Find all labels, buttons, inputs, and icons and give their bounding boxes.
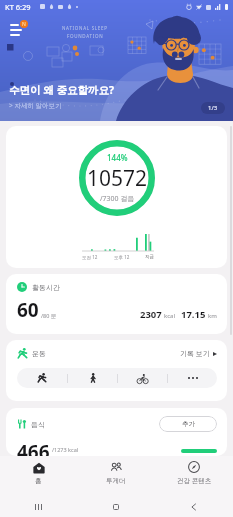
staticText: NATIONAL SLEEP xyxy=(62,25,108,31)
staticText: 1/3 xyxy=(208,104,218,112)
staticText: 10572 xyxy=(87,164,148,193)
button[interactable]: Home xyxy=(77,497,155,517)
button[interactable]: 기록 보기 xyxy=(180,349,217,359)
button[interactable]: Back xyxy=(155,497,233,517)
button[interactable]: More exercises xyxy=(168,368,217,388)
button[interactable]: Walking xyxy=(68,368,117,388)
staticText: FOUNDATION xyxy=(67,33,104,39)
staticText: 2307 xyxy=(140,308,162,321)
staticText: 수면이 왜 중요할까요? xyxy=(9,83,114,97)
button[interactable]: 홈 xyxy=(0,456,77,497)
staticText: /80 분 xyxy=(41,312,57,320)
button[interactable]: Menu xyxy=(10,22,26,36)
button[interactable]: 활동시간 xyxy=(6,274,227,334)
staticText: 운동 xyxy=(32,349,46,358)
button[interactable]: > 자세히 알아보기 xyxy=(9,101,62,110)
staticText: 144% xyxy=(107,152,128,163)
button[interactable]: 투게더 xyxy=(77,456,155,497)
staticText: N xyxy=(22,21,26,28)
staticText: 홈 xyxy=(35,477,42,485)
staticText: 기록 보기 xyxy=(180,349,210,359)
staticText: > 자세히 알아보기 xyxy=(9,101,62,110)
button[interactable]: 건강 콘텐츠 xyxy=(155,456,233,497)
staticText: /7300 걸음 xyxy=(100,194,135,204)
staticText: 60 xyxy=(17,297,39,323)
staticText: 음식 xyxy=(31,420,45,429)
staticText: /1273 kcal xyxy=(52,446,79,453)
button[interactable]: 운동 xyxy=(6,340,227,401)
staticText: kcal xyxy=(164,312,175,320)
button[interactable]: 추가 xyxy=(159,416,217,432)
staticText: 오후 12 xyxy=(114,254,130,260)
staticText: 건강 콘텐츠 xyxy=(177,476,212,485)
staticText: 투게더 xyxy=(106,477,126,485)
button[interactable]: Running xyxy=(17,368,67,388)
staticText: 오전 12 xyxy=(82,254,98,260)
staticText: 466 xyxy=(17,439,50,456)
staticText: km xyxy=(208,312,217,320)
staticText: 지금 xyxy=(145,254,154,260)
staticText: 17.15 xyxy=(181,308,206,321)
button[interactable]: 144% xyxy=(6,126,227,268)
staticText: 활동시간 xyxy=(32,283,60,292)
staticText: 추가 xyxy=(182,420,195,428)
button[interactable]: Recents xyxy=(0,497,77,517)
staticText: KT 6:29 xyxy=(5,2,31,12)
button[interactable]: 음식 xyxy=(6,408,227,456)
button[interactable]: Cycling xyxy=(118,368,167,388)
